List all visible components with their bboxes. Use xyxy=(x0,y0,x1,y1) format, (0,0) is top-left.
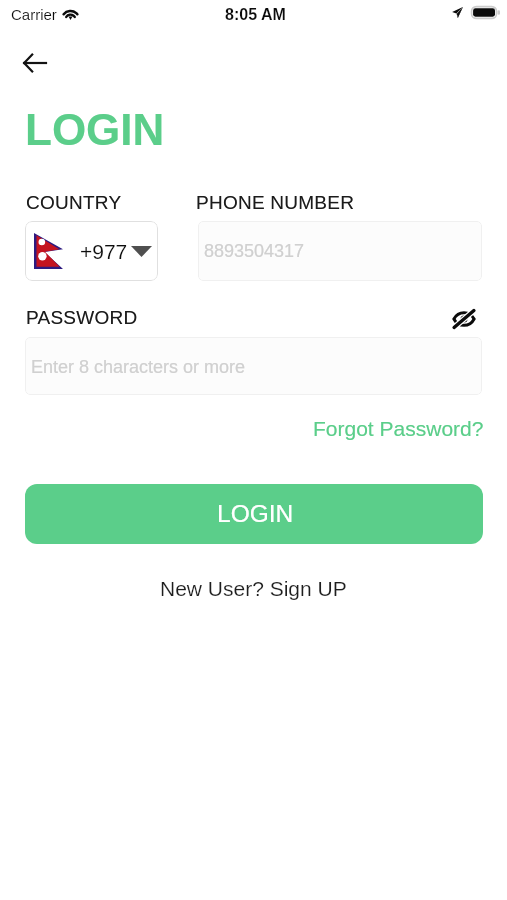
staticText: Carrier xyxy=(11,6,57,23)
staticText: COUNTRY xyxy=(26,192,122,213)
button[interactable]: Back xyxy=(8,44,60,82)
button[interactable]: Forgot Password? xyxy=(296,410,484,446)
staticText: Enter 8 characters or more xyxy=(31,357,246,377)
button[interactable]: +977 xyxy=(25,221,158,281)
button[interactable]: Show password xyxy=(445,303,483,335)
staticText: 8:05 AM xyxy=(225,6,286,24)
button[interactable]: 8893504317 xyxy=(198,221,482,281)
staticText: LOGIN xyxy=(25,105,165,154)
staticText: +977 xyxy=(80,240,128,263)
staticText: PASSWORD xyxy=(26,307,138,328)
button[interactable]: LOGIN xyxy=(25,484,483,544)
staticText: LOGIN xyxy=(217,500,294,527)
button[interactable]: New User? Sign UP xyxy=(160,577,347,600)
staticText: 8893504317 xyxy=(204,241,305,261)
staticText: COUNTRY xyxy=(26,192,122,213)
button[interactable]: Enter 8 characters or more xyxy=(25,337,482,395)
staticText: PHONE NUMBER xyxy=(196,192,355,213)
staticText: Forgot Password? xyxy=(313,417,484,440)
staticText: PASSWORD xyxy=(26,307,138,328)
staticText: PHONE NUMBER xyxy=(196,192,355,213)
